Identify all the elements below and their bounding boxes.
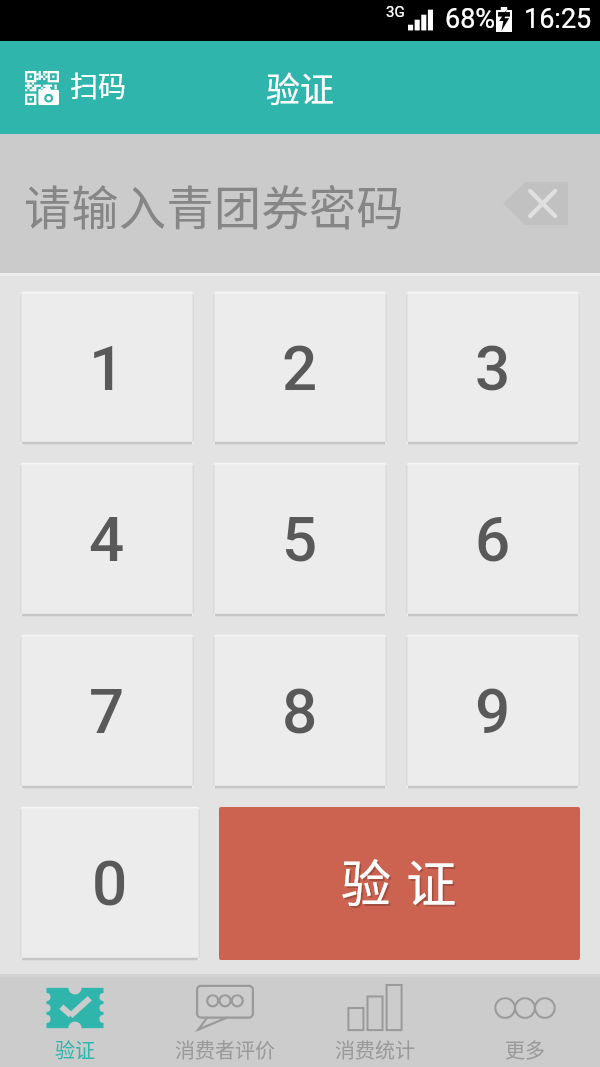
- button[interactable]: 更多: [450, 977, 600, 1067]
- button[interactable]: 扫码: [0, 57, 145, 118]
- button[interactable]: 验证: [0, 977, 150, 1067]
- staticText: 消费统计: [335, 1035, 415, 1064]
- staticText: 9: [475, 675, 511, 748]
- button[interactable]: 消费统计: [300, 977, 450, 1067]
- button[interactable]: 4: [20, 463, 194, 616]
- staticText: 16:25: [524, 3, 592, 35]
- staticText: 8: [282, 675, 318, 748]
- button[interactable]: 5: [213, 463, 387, 616]
- staticText: 68%: [445, 3, 496, 35]
- staticText: 验 证: [343, 846, 461, 918]
- staticText: 2: [282, 332, 318, 405]
- button[interactable]: 验 证: [219, 807, 580, 960]
- button[interactable]: 8: [213, 635, 387, 788]
- button[interactable]: 7: [20, 635, 194, 788]
- staticText: 3G: [386, 3, 405, 21]
- staticText: 5: [282, 503, 318, 576]
- staticText: 扫码: [70, 65, 127, 106]
- button[interactable]: 1: [20, 292, 194, 444]
- staticText: 7: [89, 675, 125, 748]
- staticText: 验证: [55, 1035, 95, 1064]
- staticText: 验证: [266, 63, 334, 112]
- staticText: 消费者评价: [175, 1035, 275, 1064]
- staticText: 0: [92, 847, 128, 920]
- staticText: 验 证: [341, 844, 459, 916]
- button[interactable]: 0: [20, 807, 200, 960]
- button[interactable]: 消费者评价: [150, 977, 300, 1067]
- staticText: 更多: [505, 1035, 545, 1064]
- button[interactable]: 3: [406, 292, 580, 444]
- staticText: 6: [475, 503, 511, 576]
- button[interactable]: 2: [213, 292, 387, 444]
- staticText: 请输入青团券密码: [24, 170, 404, 238]
- staticText: 4: [89, 503, 125, 576]
- button[interactable]: 6: [406, 463, 580, 616]
- staticText: 3: [475, 332, 511, 405]
- button[interactable]: Delete: [503, 182, 568, 225]
- button[interactable]: 9: [406, 635, 580, 788]
- staticText: 1: [89, 332, 125, 405]
